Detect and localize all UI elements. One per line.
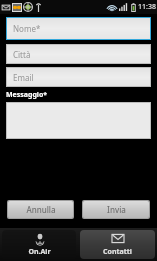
button[interactable]: Contatti <box>80 230 155 259</box>
staticText: Contatti <box>103 247 132 257</box>
staticText: Email <box>13 72 34 83</box>
staticText: Messaggio* <box>6 90 48 100</box>
staticText: 11:38 <box>138 2 156 12</box>
other: Contatti <box>112 233 124 244</box>
button[interactable]: Email <box>7 68 150 86</box>
button[interactable]: Invia <box>83 201 149 218</box>
button[interactable]: Annulla <box>8 201 73 218</box>
staticText: Invia <box>107 204 126 215</box>
button[interactable]: Nome* <box>7 18 150 39</box>
staticText: Città <box>13 49 31 60</box>
staticText: Nome* <box>13 23 41 34</box>
staticText: Annulla <box>26 204 56 215</box>
button[interactable]: Città <box>7 45 150 63</box>
other: On.Air <box>34 233 46 244</box>
button[interactable]: On.Air <box>2 230 76 259</box>
staticText: On.Air <box>28 247 51 257</box>
